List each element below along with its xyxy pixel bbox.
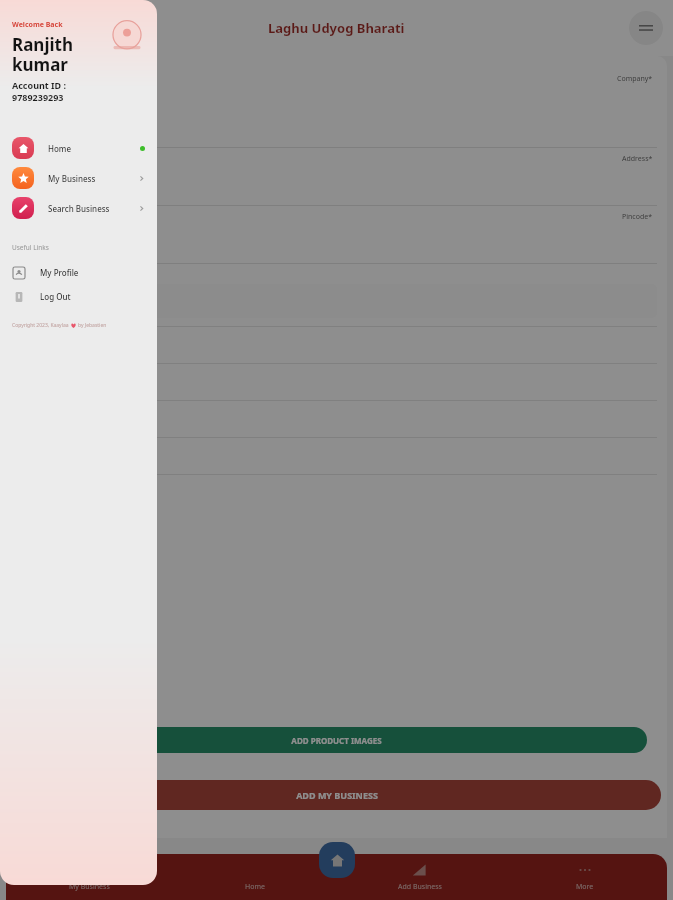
- staticText: Search Business: [48, 203, 138, 214]
- button[interactable]: Menu: [629, 11, 663, 45]
- button[interactable]: My Profile: [12, 260, 145, 284]
- staticText: Company*: [617, 74, 653, 84]
- button[interactable]: Home: [172, 854, 337, 900]
- staticText: Pincode*: [622, 212, 653, 222]
- staticText: 9789239293: [12, 91, 64, 103]
- staticText: My Profile: [40, 267, 79, 278]
- staticText: My Business: [69, 882, 110, 892]
- staticText: Home: [48, 143, 140, 154]
- staticText: More: [576, 882, 594, 892]
- staticText: Home: [245, 882, 265, 892]
- button[interactable]: Home: [12, 133, 145, 163]
- staticText: by Jebastien: [78, 322, 107, 329]
- staticText: ADD PRODUCT IMAGES: [291, 735, 382, 746]
- staticText: Useful Links: [12, 243, 49, 252]
- button[interactable]: Add Business: [337, 854, 502, 900]
- staticText: Copyright 2023, Kaaylaa: [12, 322, 69, 329]
- button[interactable]: Home: [319, 842, 355, 878]
- button[interactable]: Search Business: [12, 193, 145, 223]
- staticText: Log Out: [40, 291, 71, 302]
- staticText: My Business: [48, 173, 138, 184]
- button[interactable]: Log Out: [12, 284, 145, 308]
- staticText: Account ID :: [12, 79, 67, 91]
- staticText: Ranjith kumar: [12, 33, 105, 76]
- button[interactable]: ADD PRODUCT IMAGES: [26, 727, 647, 753]
- button[interactable]: More: [502, 854, 667, 900]
- staticText: Welcome Back: [12, 20, 63, 30]
- staticText: Add Business: [398, 882, 442, 892]
- button[interactable]: My Business: [12, 163, 145, 193]
- staticText: ADD MY BUSINESS: [296, 789, 378, 801]
- staticText: Laghu Udyog Bharati: [268, 19, 405, 37]
- staticText: Address*: [622, 154, 653, 164]
- button[interactable]: My Business: [6, 854, 172, 900]
- button[interactable]: ADD MY BUSINESS: [12, 780, 661, 810]
